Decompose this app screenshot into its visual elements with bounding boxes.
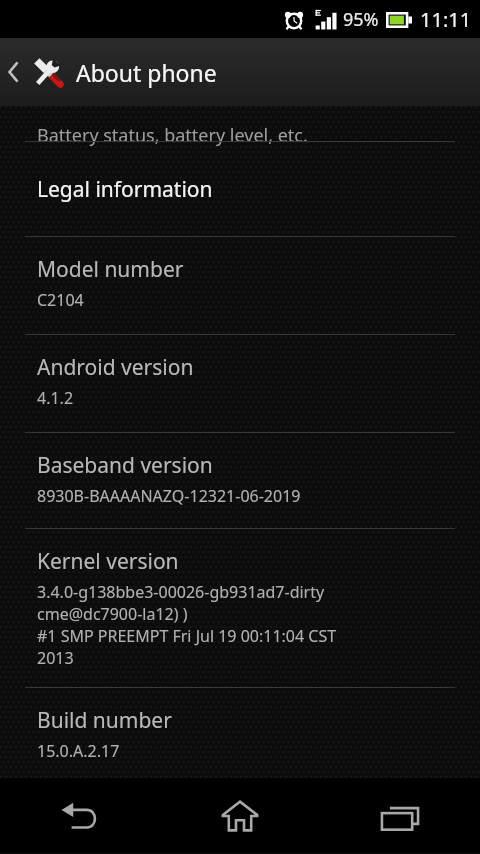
staticText: About phone (76, 57, 217, 88)
button[interactable]: Build number (0, 688, 480, 778)
button[interactable]: Model number (0, 237, 480, 334)
staticText: 95% (343, 7, 379, 32)
staticText: Battery status, battery level, etc. (37, 123, 308, 148)
button[interactable]: Navigate up, About phone (0, 38, 480, 106)
staticText: Android version (37, 353, 194, 382)
staticText: 3.4.0-g138bbe3-00026-gb931ad7-dirty (37, 581, 325, 603)
staticText: 11:11 (420, 6, 472, 33)
staticText: 8930B-BAAAANAZQ-12321-06-2019 (37, 485, 301, 507)
staticText: 15.0.A.2.17 (37, 740, 120, 762)
staticText: C2104 (37, 289, 84, 311)
button[interactable]: Baseband version (0, 433, 480, 528)
staticText: Legal information (37, 175, 213, 204)
staticText: Baseband version (37, 451, 213, 480)
staticText: cme@dc7900-la12) ) (37, 603, 188, 625)
staticText: #1 SMP PREEMPT Fri Jul 19 00:11:04 CST (37, 625, 337, 647)
staticText: Kernel version (37, 547, 179, 576)
button[interactable]: Recent apps (320, 778, 480, 853)
button[interactable]: Kernel version (0, 529, 480, 687)
staticText: 4.1.2 (37, 387, 74, 409)
button[interactable]: Home (160, 778, 320, 853)
staticText: Model number (37, 255, 184, 284)
staticText: Build number (37, 706, 172, 735)
button[interactable]: Battery status, battery level, etc. (0, 106, 480, 141)
staticText: 2013 (37, 647, 74, 669)
button[interactable]: Android version (0, 335, 480, 432)
button[interactable]: Legal information (0, 142, 480, 236)
button[interactable]: Back (0, 778, 160, 853)
